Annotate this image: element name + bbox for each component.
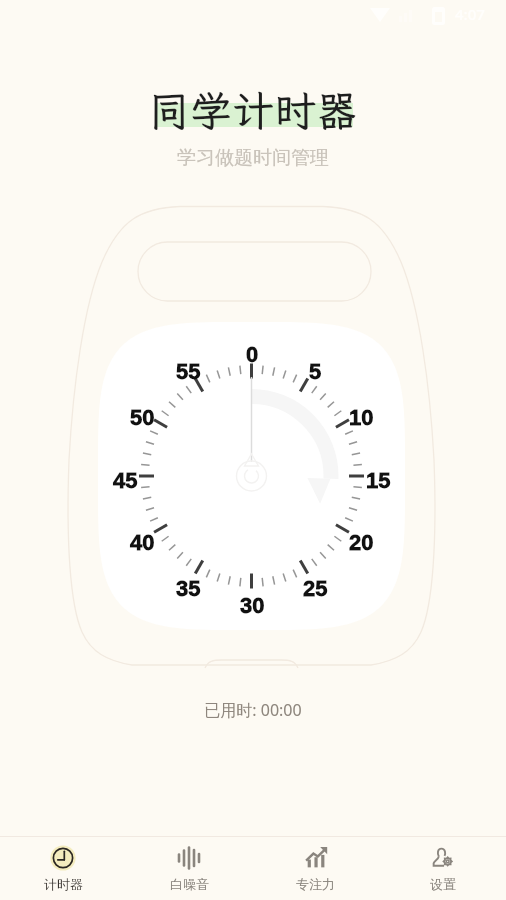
staticText: 白噪音 xyxy=(170,876,209,892)
staticText: 15 xyxy=(366,468,391,493)
button[interactable]: 白噪音 xyxy=(126,840,252,897)
staticText: 5 xyxy=(309,359,322,384)
other: 白噪音 xyxy=(176,845,202,871)
staticText: 30 xyxy=(240,593,265,618)
staticText: 20 xyxy=(349,530,374,555)
staticText: 4:07 xyxy=(455,4,485,24)
button[interactable]: 专注力 xyxy=(252,840,379,897)
staticText: 同学计时器 xyxy=(148,83,359,138)
button[interactable]: 设置 xyxy=(379,840,506,897)
staticText: 55 xyxy=(176,359,201,384)
other: 专注力 xyxy=(303,845,329,871)
staticText: 50 xyxy=(130,405,155,430)
staticText: 计时器 xyxy=(44,876,83,892)
staticText: 0 xyxy=(246,342,259,367)
staticText: 专注力 xyxy=(296,876,335,892)
staticText: 学习做题时间管理 xyxy=(0,146,506,170)
staticText: 设置 xyxy=(430,876,456,892)
other: 计时器 xyxy=(50,845,76,871)
staticText: 25 xyxy=(303,576,328,601)
button[interactable]: 计时器 xyxy=(0,840,126,897)
staticText: 40 xyxy=(130,530,155,555)
staticText: 35 xyxy=(176,576,201,601)
staticText: 10 xyxy=(349,405,374,430)
other: 设置 xyxy=(430,845,456,871)
staticText: 已用时: 00:00 xyxy=(0,699,506,721)
staticText: 45 xyxy=(113,468,138,493)
